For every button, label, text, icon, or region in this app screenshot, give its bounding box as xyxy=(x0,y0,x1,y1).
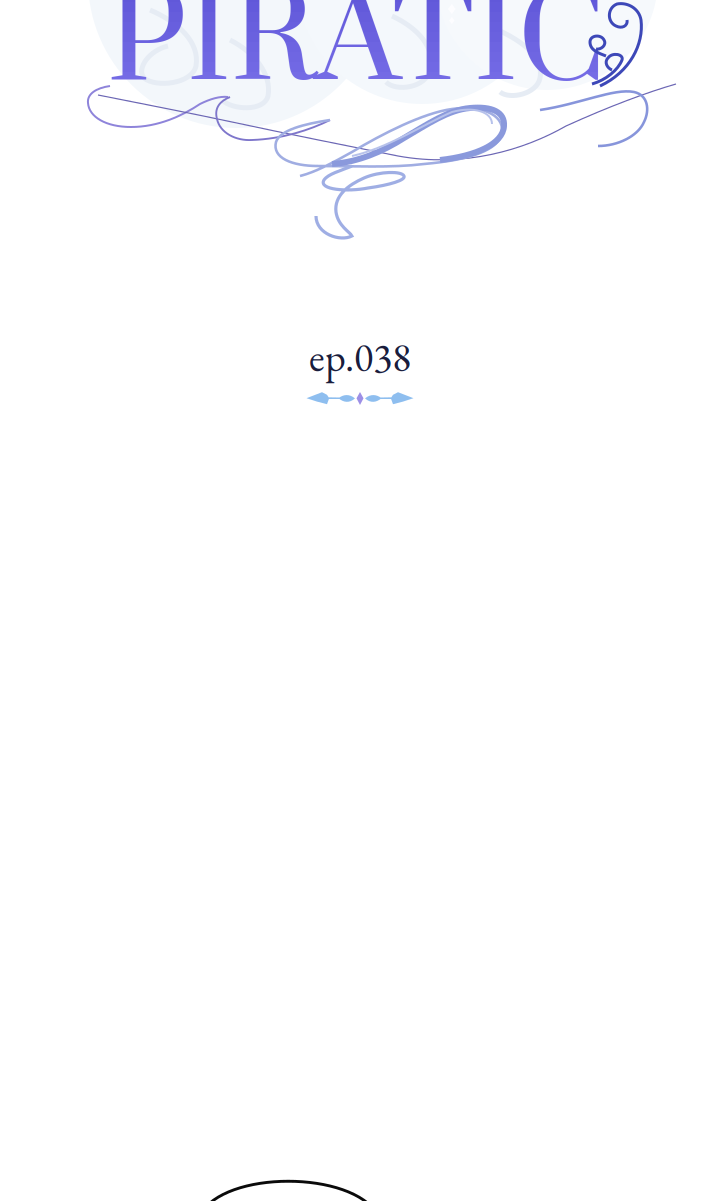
staticText: ep.038 xyxy=(309,331,411,383)
